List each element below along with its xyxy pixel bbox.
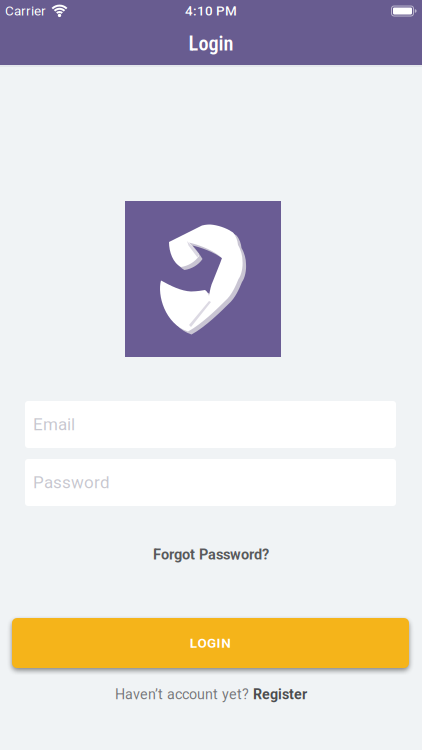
staticText: Register — [253, 686, 307, 703]
staticText: Carrier — [5, 3, 46, 19]
staticText: Login — [188, 32, 233, 55]
staticText: Haven’t account yet? — [115, 686, 249, 703]
staticText: LOGIN — [190, 635, 231, 651]
button[interactable]: LOGIN — [12, 618, 409, 668]
staticText: 4:10 PM — [185, 3, 237, 19]
button[interactable]: Forgot Password? — [153, 546, 269, 563]
staticText: Email — [33, 414, 75, 434]
staticText: Password — [33, 472, 110, 492]
button[interactable]: Register — [253, 686, 307, 703]
button[interactable]: Email — [25, 401, 396, 448]
staticText: Forgot Password? — [153, 546, 269, 563]
button[interactable]: Password — [25, 459, 396, 506]
